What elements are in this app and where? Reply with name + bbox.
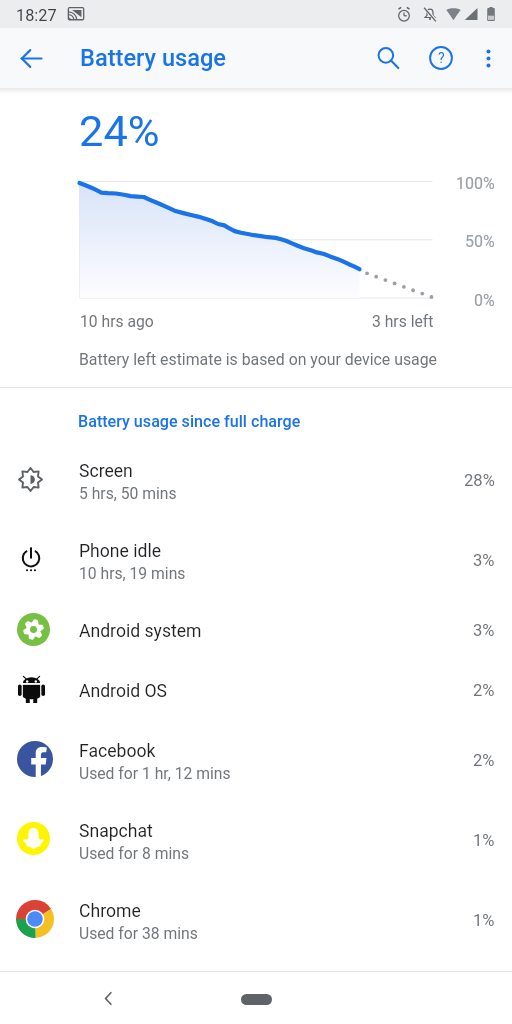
staticText: Android system bbox=[79, 621, 202, 642]
staticText: Used for 38 mins bbox=[79, 924, 198, 942]
button[interactable]: Android system bbox=[0, 598, 512, 658]
staticText: ? bbox=[438, 50, 445, 66]
button[interactable]: Facebook bbox=[0, 718, 512, 798]
staticText: 3% bbox=[473, 551, 495, 570]
staticText: 50% bbox=[465, 232, 495, 251]
staticText: 18:27 bbox=[16, 6, 57, 25]
button[interactable]: Chrome bbox=[0, 878, 512, 958]
staticText: 2% bbox=[473, 681, 495, 700]
staticText: 3 hrs left bbox=[372, 312, 434, 330]
button[interactable]: Home bbox=[220, 984, 292, 1014]
staticText: 24% bbox=[79, 106, 160, 157]
staticText: Phone idle bbox=[79, 541, 162, 562]
staticText: Battery usage bbox=[80, 44, 227, 72]
button[interactable]: Screen bbox=[0, 438, 512, 518]
staticText: Chrome bbox=[79, 901, 141, 922]
staticText: 0% bbox=[474, 291, 495, 310]
staticText: Battery usage since full charge bbox=[78, 412, 301, 431]
button[interactable]: Search bbox=[364, 34, 412, 82]
staticText: 10 hrs ago bbox=[80, 312, 154, 330]
staticText: Snapchat bbox=[79, 821, 153, 842]
staticText: 5 hrs, 50 mins bbox=[79, 484, 177, 502]
button[interactable]: Navigate up bbox=[7, 34, 55, 82]
staticText: Used for 8 mins bbox=[79, 844, 189, 862]
staticText: Battery left estimate is based on your d… bbox=[79, 350, 438, 369]
button[interactable]: Help bbox=[417, 34, 465, 82]
staticText: Used for 1 hr, 12 mins bbox=[79, 764, 231, 782]
staticText: 10 hrs, 19 mins bbox=[79, 564, 186, 582]
button[interactable]: Snapchat bbox=[0, 798, 512, 878]
button[interactable]: Phone idle bbox=[0, 518, 512, 598]
staticText: Screen bbox=[79, 461, 133, 482]
staticText: 28% bbox=[464, 471, 495, 490]
staticText: 1% bbox=[473, 911, 495, 930]
staticText: 100% bbox=[456, 174, 495, 193]
button[interactable]: Back bbox=[84, 974, 132, 1022]
staticText: 3% bbox=[473, 621, 495, 640]
staticText: Facebook bbox=[79, 741, 156, 762]
button[interactable]: Android OS bbox=[0, 658, 512, 718]
staticText: 2% bbox=[473, 751, 495, 770]
staticText: 1% bbox=[473, 831, 495, 850]
staticText: Android OS bbox=[79, 681, 168, 702]
button[interactable]: More options bbox=[464, 34, 512, 82]
